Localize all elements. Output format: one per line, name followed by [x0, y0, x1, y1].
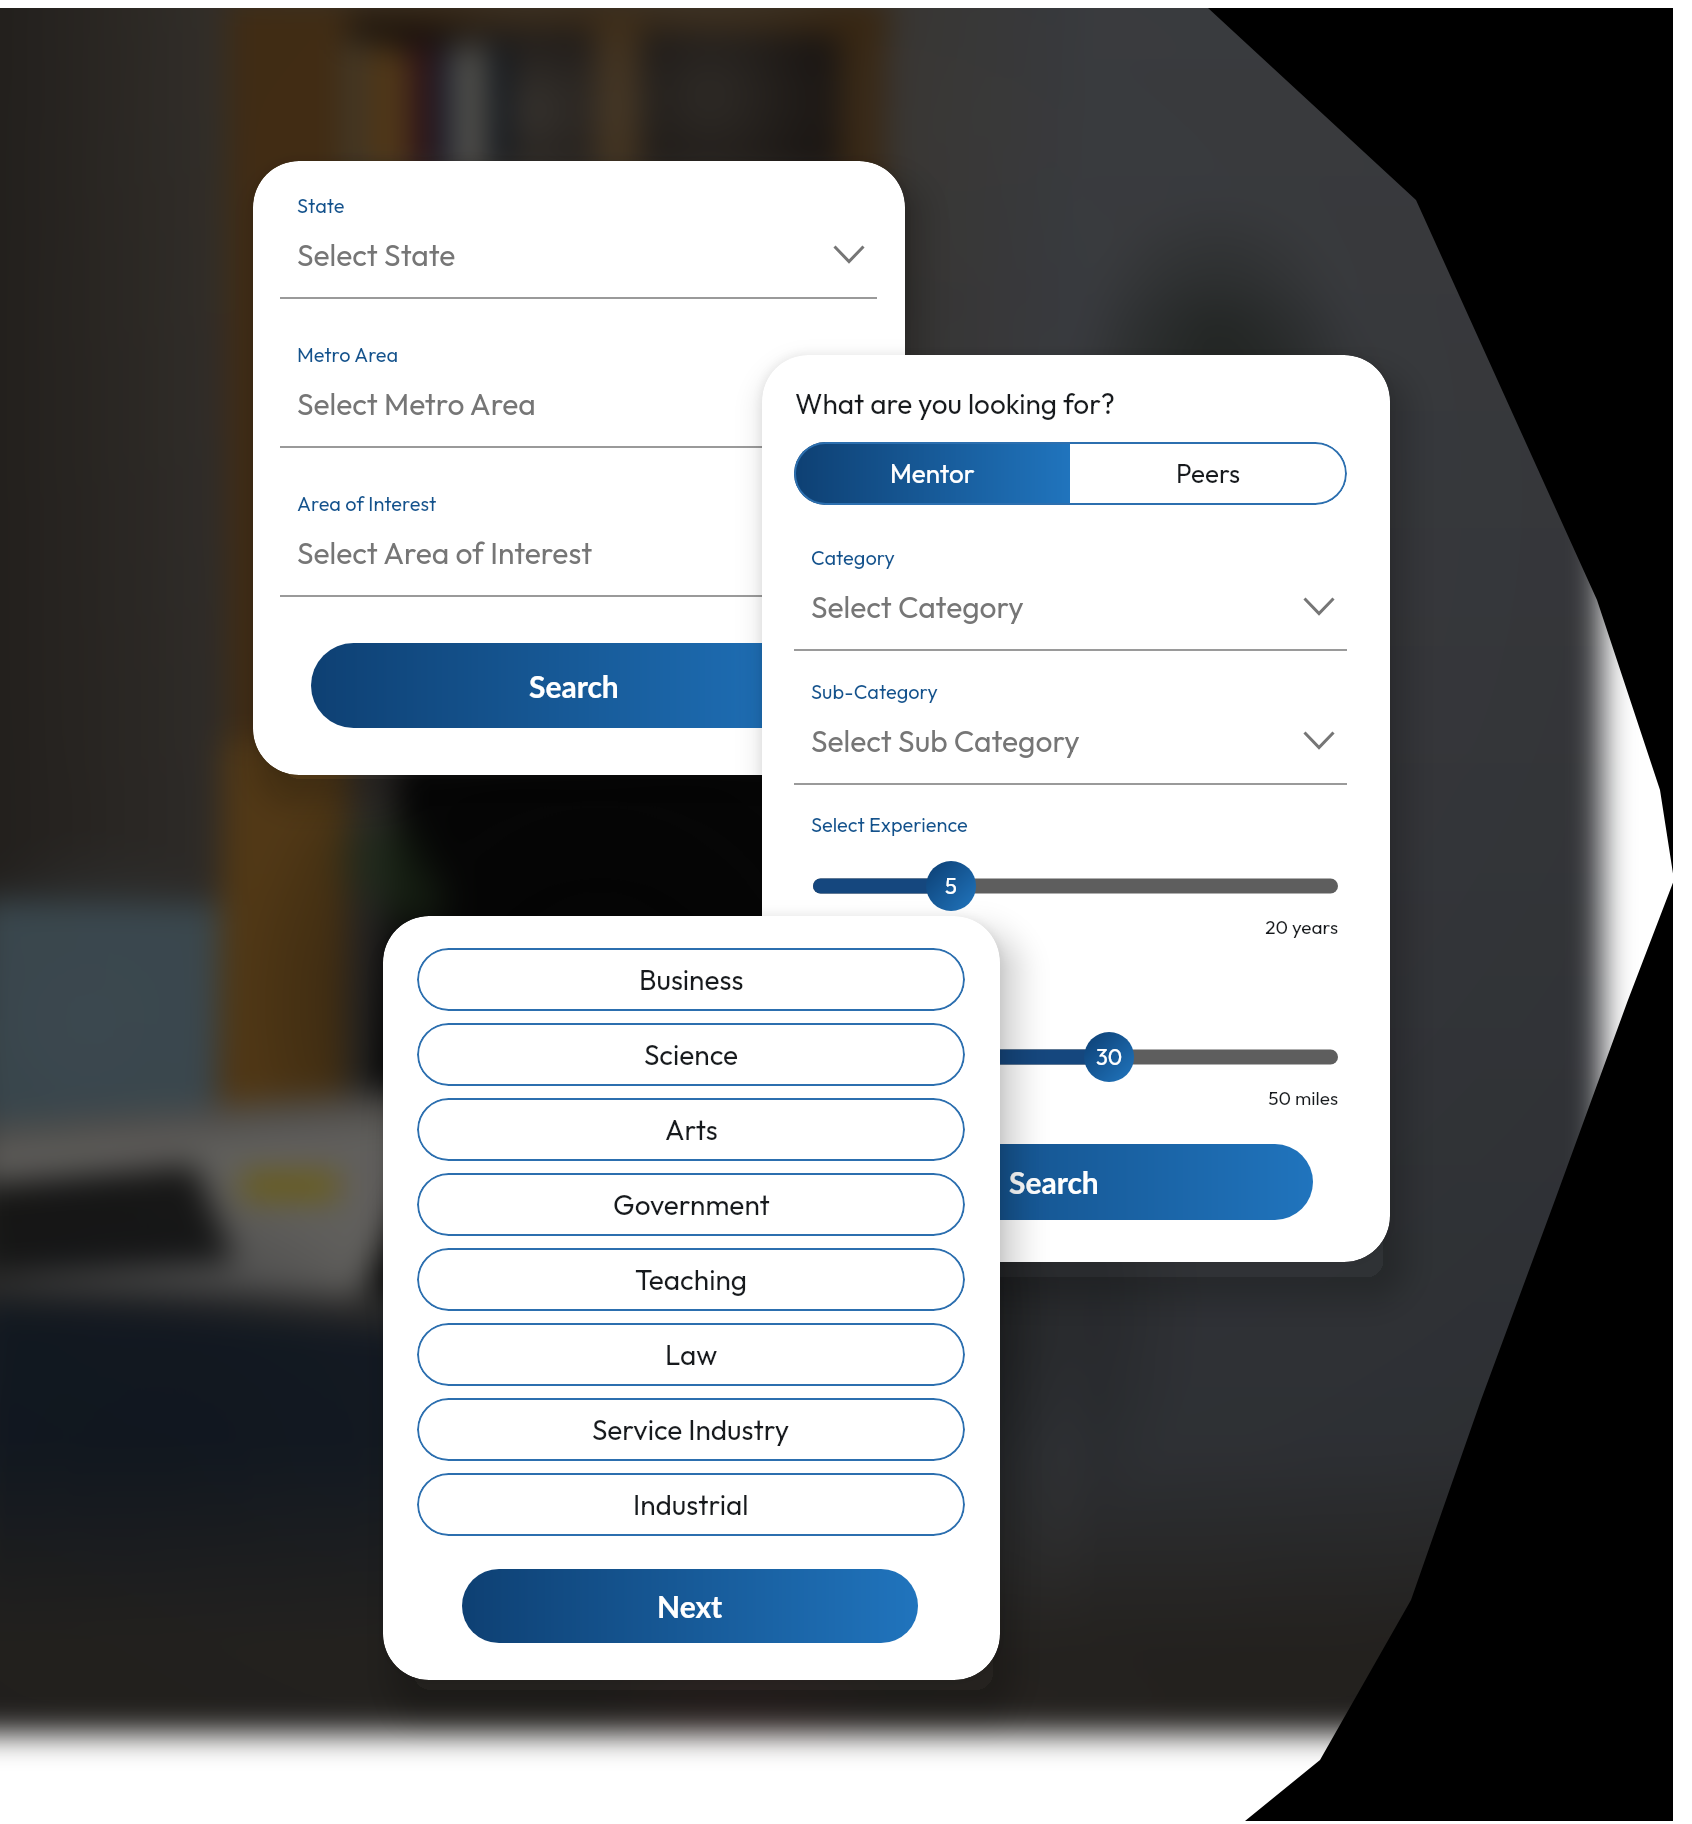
- staticText: Law: [665, 1337, 718, 1372]
- staticText: Government: [613, 1187, 770, 1222]
- button[interactable]: Business: [417, 948, 965, 1011]
- button[interactable]: Area of Interest: [280, 498, 877, 602]
- staticText: Area of Interest: [297, 491, 437, 516]
- staticText: Science: [644, 1037, 739, 1072]
- button[interactable]: State: [280, 200, 877, 304]
- staticText: Select Distance: [811, 983, 947, 1008]
- staticText: Service Industry: [592, 1412, 790, 1447]
- staticText: Metro Area: [297, 342, 399, 367]
- button[interactable]: Law: [417, 1323, 965, 1386]
- staticText: Search: [529, 668, 619, 704]
- staticText: 5: [945, 872, 957, 900]
- staticText: 20 years: [813, 915, 1338, 939]
- staticText: Select Sub Category: [811, 722, 1080, 760]
- staticText: What are you looking for?: [795, 386, 1116, 421]
- staticText: State: [297, 193, 345, 218]
- button[interactable]: Next: [462, 1569, 918, 1643]
- staticText: Next: [657, 1588, 723, 1624]
- staticText: Select Experience: [811, 812, 968, 837]
- button[interactable]: Search: [794, 1144, 1313, 1220]
- staticText: Search: [1009, 1164, 1099, 1200]
- button[interactable]: Sub-Category: [794, 686, 1347, 790]
- button[interactable]: Mentor: [794, 442, 1070, 505]
- staticText: 50 miles: [813, 1086, 1338, 1110]
- staticText: Business: [639, 962, 744, 997]
- button[interactable]: Peers: [1070, 442, 1347, 505]
- staticText: Category: [811, 545, 895, 570]
- staticText: Select State: [297, 236, 456, 274]
- button[interactable]: Industrial: [417, 1473, 965, 1536]
- staticText: Teaching: [635, 1262, 747, 1297]
- staticText: Industrial: [633, 1487, 749, 1522]
- button[interactable]: Government: [417, 1173, 965, 1236]
- button[interactable]: Arts: [417, 1098, 965, 1161]
- button[interactable]: Teaching: [417, 1248, 965, 1311]
- button[interactable]: Category: [794, 552, 1347, 656]
- button[interactable]: Science: [417, 1023, 965, 1086]
- staticText: Select Metro Area: [297, 385, 536, 423]
- staticText: 30: [1096, 1043, 1123, 1071]
- staticText: Select Category: [811, 588, 1024, 626]
- button[interactable]: Metro Area: [280, 349, 877, 453]
- staticText: Arts: [665, 1112, 718, 1147]
- staticText: Peers: [1176, 457, 1241, 490]
- staticText: Select Area of Interest: [297, 534, 593, 572]
- staticText: Mentor: [890, 457, 975, 490]
- staticText: Sub-Category: [811, 679, 938, 704]
- button[interactable]: Search: [311, 643, 837, 728]
- button[interactable]: Service Industry: [417, 1398, 965, 1461]
